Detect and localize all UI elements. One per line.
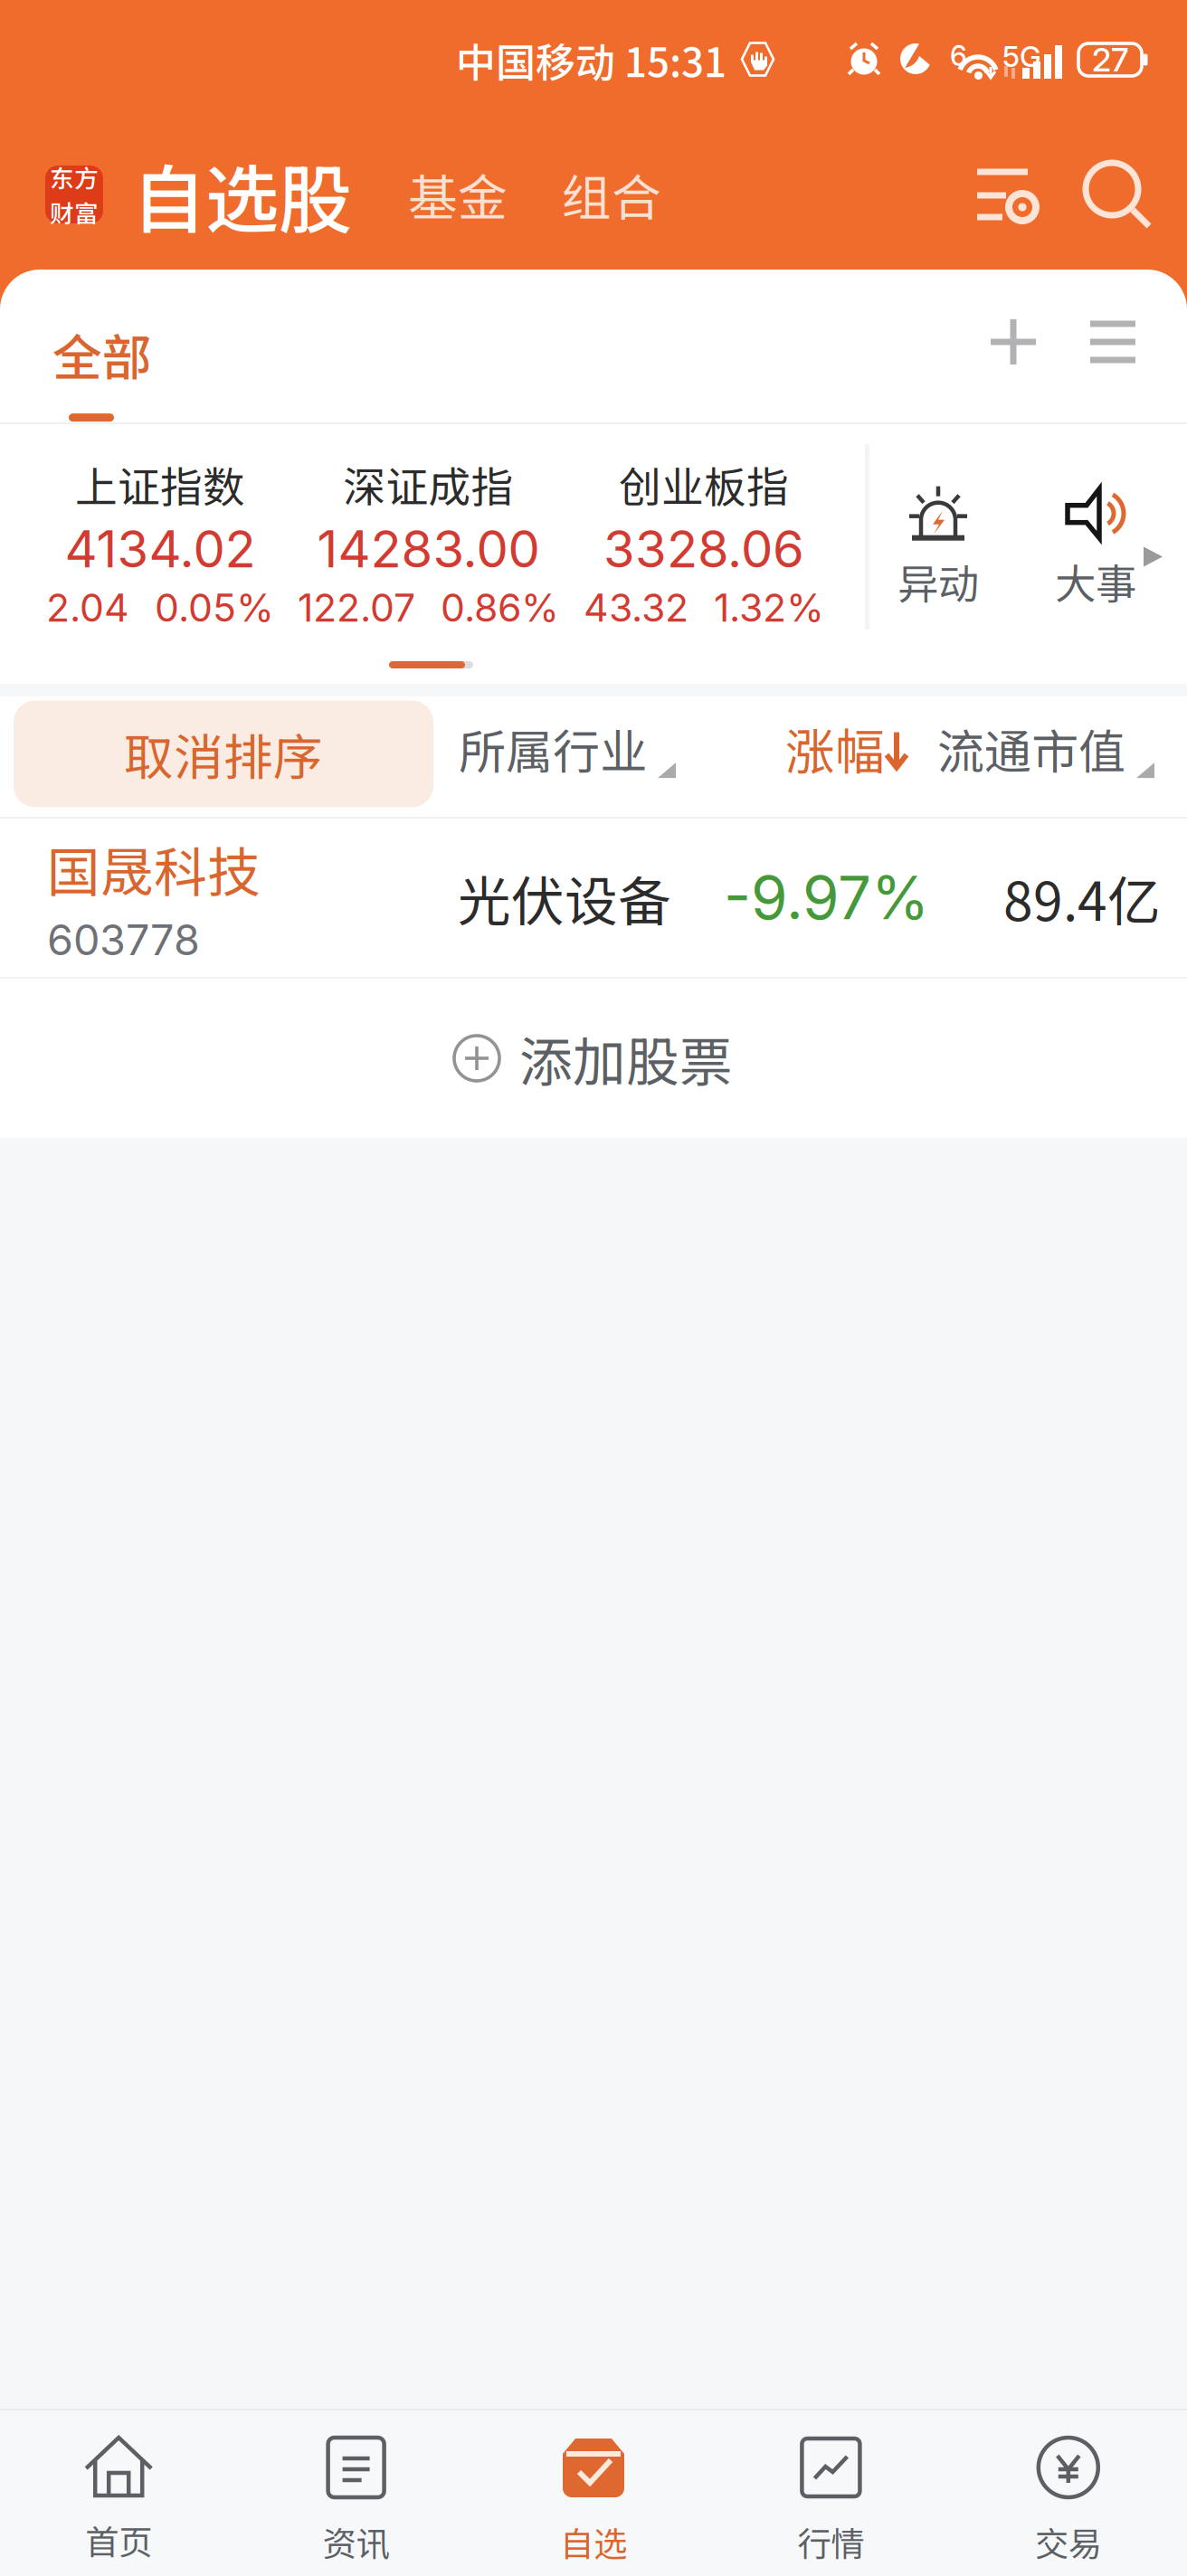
staticText: 自选股 xyxy=(132,141,352,248)
button[interactable]: 资讯 xyxy=(237,2410,475,2576)
button[interactable]: 自选股 xyxy=(132,141,352,248)
staticText: 6 xyxy=(950,39,967,72)
staticText: 自选 xyxy=(560,2517,627,2566)
staticText: 行情 xyxy=(797,2517,864,2566)
button[interactable]: 全部 xyxy=(52,270,154,422)
button[interactable]: 深证成指 xyxy=(298,454,559,631)
staticText: 上证指数 xyxy=(75,454,245,515)
staticText: 财富 xyxy=(50,194,99,229)
staticText: 全部 xyxy=(52,318,152,390)
staticText: 东方 xyxy=(50,160,99,194)
button[interactable]: 大事 xyxy=(1055,486,1136,611)
staticText: 0.05% xyxy=(155,584,274,631)
button[interactable]: 基金 xyxy=(408,159,508,230)
staticText: 4134.02 xyxy=(65,518,256,580)
button[interactable]: 所属行业 xyxy=(459,714,676,783)
staticText: 0.86% xyxy=(441,584,559,631)
staticText: 涨幅 xyxy=(785,713,885,784)
staticText: 2.04 xyxy=(46,584,129,631)
button[interactable]: Search xyxy=(1082,159,1153,230)
staticText: 89.4亿 xyxy=(1003,859,1161,936)
staticText: 深证成指 xyxy=(343,454,513,515)
staticText: -9.97% xyxy=(724,862,929,933)
button[interactable]: 添加股票 xyxy=(0,979,1187,1138)
button[interactable]: 首页 xyxy=(0,2410,237,2576)
button[interactable]: Manage groups xyxy=(1066,270,1160,414)
button[interactable]: 取消排序 xyxy=(14,695,433,802)
button[interactable]: Sort settings xyxy=(975,163,1039,226)
staticText: 5G xyxy=(1002,39,1041,74)
staticText: 3328.06 xyxy=(603,518,804,580)
staticText: 首页 xyxy=(85,2515,152,2564)
staticText: 27 xyxy=(1092,40,1128,79)
staticText: 基金 xyxy=(408,159,508,230)
staticText: 光伏设备 xyxy=(458,859,671,936)
staticText: 14283.00 xyxy=(317,518,540,580)
button[interactable]: 组合 xyxy=(562,159,661,230)
staticText: 交易 xyxy=(1035,2517,1102,2566)
staticText: 异动 xyxy=(897,551,979,611)
staticText: 122.07 xyxy=(298,584,415,631)
staticText: 资讯 xyxy=(323,2517,390,2566)
button[interactable]: 异动 xyxy=(897,486,979,611)
button[interactable]: 涨幅 xyxy=(785,713,908,784)
staticText: 所属行业 xyxy=(459,714,647,783)
button[interactable]: 创业板指 xyxy=(584,454,824,631)
button[interactable]: 上证指数 xyxy=(46,454,274,631)
staticText: 中国移动 15:31 xyxy=(456,31,726,88)
button[interactable]: Add group xyxy=(966,270,1060,414)
button[interactable]: 自选 xyxy=(475,2410,712,2576)
button[interactable]: 行情 xyxy=(712,2410,950,2576)
staticText: 流通市值 xyxy=(937,714,1125,783)
staticText: 添加股票 xyxy=(519,1020,733,1097)
staticText: 国晟科技 xyxy=(47,830,261,907)
staticText: 创业板指 xyxy=(619,454,789,515)
staticText: 取消排序 xyxy=(124,718,323,790)
staticText: 组合 xyxy=(562,159,661,230)
button[interactable]: 交易 xyxy=(950,2410,1187,2576)
staticText: 603778 xyxy=(47,914,200,965)
button[interactable]: 国晟科技 xyxy=(0,819,1187,977)
button[interactable]: 流通市值 xyxy=(937,714,1154,783)
staticText: 1.32% xyxy=(714,584,824,631)
staticText: 43.32 xyxy=(584,584,688,631)
staticText: 大事 xyxy=(1055,551,1136,611)
